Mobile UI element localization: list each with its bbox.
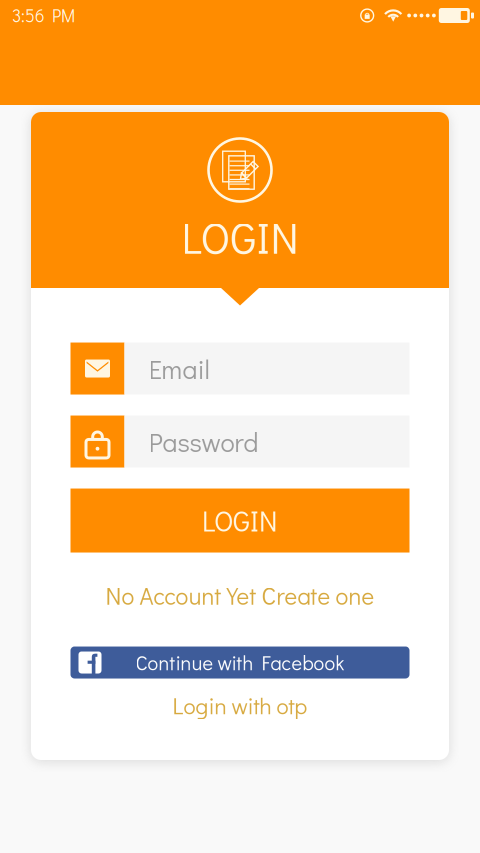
staticText: Login with otp: [172, 691, 307, 720]
button[interactable]: Login with otp: [70, 691, 409, 719]
button[interactable]: LOGIN: [70, 488, 409, 552]
staticText: Password: [148, 424, 258, 459]
staticText: No Account Yet Create one: [105, 580, 374, 611]
staticText: LOGIN: [202, 502, 278, 539]
staticText: LOGIN: [181, 209, 298, 265]
button[interactable]: Continue with Facebook: [70, 646, 409, 678]
staticText: 3:56 PM: [12, 4, 75, 27]
staticText: Email: [148, 351, 209, 386]
button[interactable]: No Account Yet Create one: [70, 580, 409, 610]
staticText: Continue with Facebook: [135, 649, 344, 676]
